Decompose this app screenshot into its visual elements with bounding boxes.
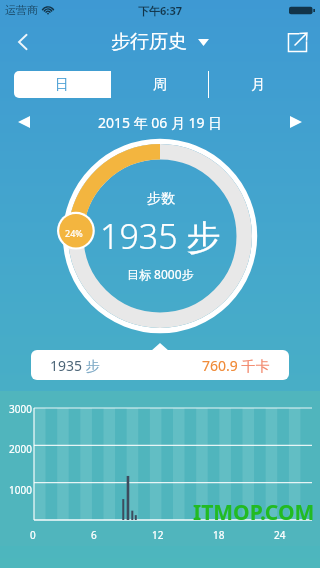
staticText: 下午6:37: [138, 3, 182, 18]
button[interactable]: 周: [111, 71, 208, 98]
staticText: ITMOP.COM: [193, 498, 315, 527]
staticText: 周: [153, 76, 167, 94]
button[interactable]: 月: [209, 71, 306, 98]
button[interactable]: Next day: [283, 109, 309, 135]
staticText: 2015 年 06 月 19 日: [98, 113, 223, 132]
staticText: 1935 步: [100, 213, 221, 259]
staticText: 步数: [147, 190, 175, 208]
button[interactable]: 24%: [63, 139, 257, 333]
button[interactable]: 日: [14, 71, 110, 98]
staticText: 18: [213, 528, 225, 542]
staticText: 24%: [65, 227, 83, 239]
staticText: 12: [152, 528, 164, 542]
button[interactable]: 1935 步: [31, 350, 289, 380]
staticText: 760.9 千卡: [202, 356, 270, 375]
staticText: 0: [30, 528, 36, 542]
staticText: 日: [55, 76, 69, 94]
staticText: 目标 8000步: [127, 266, 194, 282]
staticText: 步行历史: [111, 30, 187, 54]
staticText: 24: [274, 528, 286, 542]
staticText: 运营商: [5, 3, 38, 17]
staticText: 6: [91, 528, 97, 542]
staticText: 月: [251, 76, 265, 94]
staticText: 1000: [9, 483, 32, 497]
button[interactable]: 步行历史: [111, 30, 209, 54]
button[interactable]: Back: [0, 20, 46, 64]
button[interactable]: Share: [274, 20, 320, 64]
staticText: 2000: [9, 442, 32, 456]
staticText: 1935 步: [50, 356, 100, 375]
staticText: 3000: [9, 402, 32, 416]
button[interactable]: Previous day: [11, 109, 37, 135]
